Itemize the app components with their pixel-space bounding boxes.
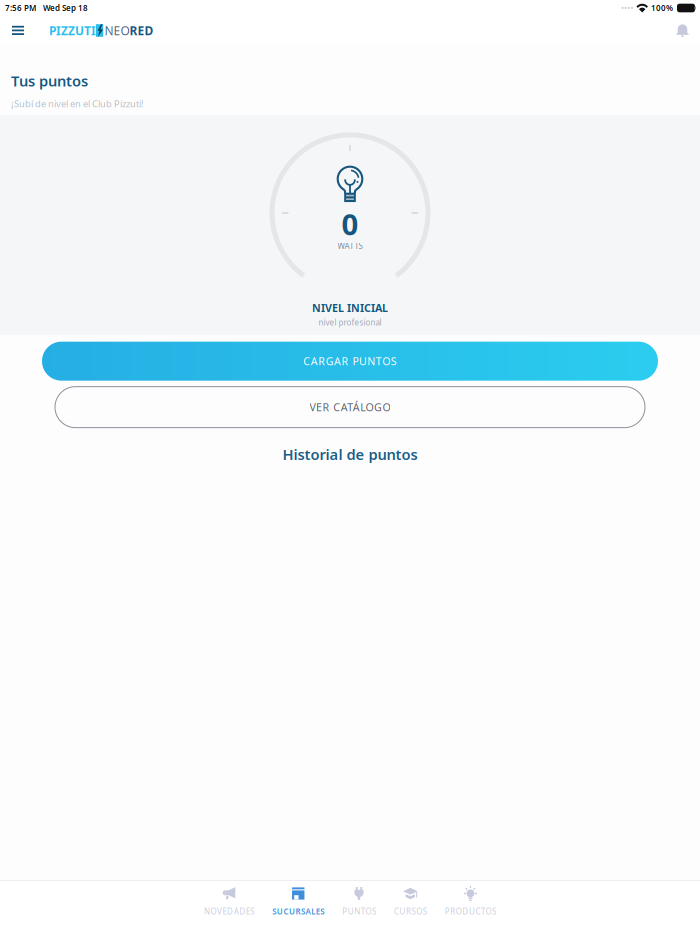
staticText: PUNTOS bbox=[342, 906, 376, 917]
staticText: NIVEL INICIAL bbox=[312, 301, 388, 315]
button[interactable]: SUCURSALES bbox=[263, 881, 333, 921]
button[interactable]: VER CATÁLOGO bbox=[55, 387, 645, 428]
staticText: SUCURSALES bbox=[272, 906, 324, 917]
button[interactable]: Menu bbox=[1, 16, 35, 45]
staticText: nivel profesional bbox=[318, 317, 381, 328]
button[interactable]: CARGAR PUNTOS bbox=[42, 342, 658, 381]
staticText: PRODUCTOS bbox=[445, 906, 496, 917]
staticText: NEO bbox=[104, 22, 129, 38]
staticText: CURSOS bbox=[394, 906, 427, 917]
button[interactable]: PUNTOS bbox=[333, 881, 385, 921]
staticText: ¡Subí de nivel en el Club Pizzuti! bbox=[11, 97, 144, 110]
button[interactable]: CURSOS bbox=[385, 881, 436, 921]
staticText: 100% bbox=[651, 3, 673, 13]
staticText: CARGAR PUNTOS bbox=[303, 354, 397, 368]
staticText: PIZZUTI bbox=[49, 22, 96, 38]
staticText: RED bbox=[129, 22, 153, 38]
staticText: 0 bbox=[341, 204, 358, 243]
button[interactable]: NOVEDADES bbox=[195, 881, 263, 921]
button[interactable]: PRODUCTOS bbox=[436, 881, 505, 921]
staticText: Wed Sep 18 bbox=[43, 3, 88, 13]
staticText: WATTS bbox=[337, 241, 362, 251]
staticText: Historial de puntos bbox=[282, 445, 417, 464]
staticText: VER CATÁLOGO bbox=[309, 400, 390, 414]
button[interactable]: Notifications bbox=[666, 15, 699, 45]
staticText: Tus puntos bbox=[11, 71, 88, 90]
staticText: NOVEDADES bbox=[204, 906, 254, 917]
staticText: 7:56 PM bbox=[5, 3, 36, 13]
